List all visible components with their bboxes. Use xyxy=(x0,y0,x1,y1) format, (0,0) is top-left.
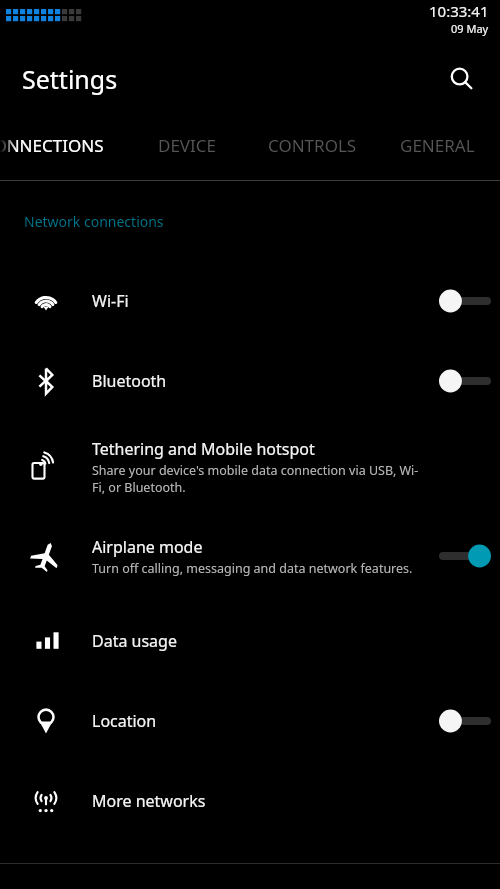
button[interactable]: More networks xyxy=(0,761,500,841)
staticText: Settings xyxy=(22,62,118,96)
staticText: 10:33:41 xyxy=(429,1,489,21)
button[interactable]: Switch on xyxy=(439,543,491,569)
button[interactable]: Location xyxy=(0,681,500,761)
button[interactable]: Search xyxy=(438,56,484,102)
staticText: Bluetooth xyxy=(92,370,167,392)
button[interactable]: Switch off xyxy=(439,368,491,394)
button[interactable]: Airplane mode xyxy=(0,511,500,601)
staticText: GENERAL xyxy=(400,134,475,157)
button[interactable]: DEVICE xyxy=(125,110,250,180)
staticText: Share your device's mobile data connecti… xyxy=(92,462,420,495)
staticText: CONNECTIONS xyxy=(0,134,104,157)
button[interactable]: Switch off xyxy=(439,288,491,314)
button[interactable]: CONNECTIONS xyxy=(0,110,125,180)
button[interactable]: Bluetooth xyxy=(0,341,500,421)
staticText: Network connections xyxy=(24,212,164,231)
staticText: Data usage xyxy=(92,630,177,652)
staticText: Wi-Fi xyxy=(92,290,129,312)
staticText: 09 May xyxy=(451,21,489,36)
staticText: CONTROLS xyxy=(268,134,357,157)
staticText: Location xyxy=(92,710,157,732)
staticText: More networks xyxy=(92,790,206,812)
staticText: Airplane mode xyxy=(92,536,203,558)
button[interactable]: Tethering and Mobile hotspot xyxy=(0,421,500,511)
button[interactable]: Switch off xyxy=(439,708,491,734)
button[interactable]: Wi-Fi xyxy=(0,261,500,341)
staticText: Tethering and Mobile hotspot xyxy=(92,438,315,460)
button[interactable]: GENERAL xyxy=(375,110,500,180)
button[interactable]: Network connections xyxy=(24,212,164,231)
staticText: DEVICE xyxy=(158,134,217,157)
staticText: Turn off calling, messaging and data net… xyxy=(92,560,413,577)
button[interactable]: CONTROLS xyxy=(250,110,375,180)
button[interactable]: Data usage xyxy=(0,601,500,681)
button[interactable]: Settings xyxy=(22,62,118,96)
